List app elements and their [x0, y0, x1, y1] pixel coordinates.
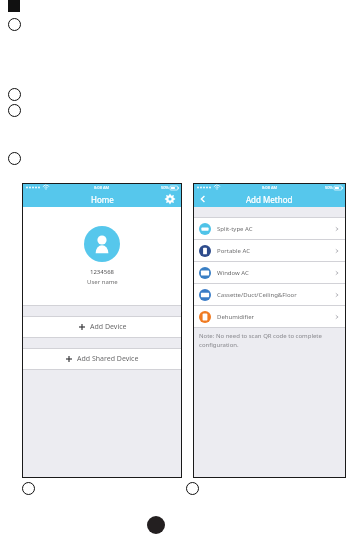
- staticText: Window AC: [217, 269, 249, 277]
- staticText: Split-type AC: [217, 225, 253, 233]
- button[interactable]: Add Device: [22, 317, 182, 337]
- button[interactable]: Portable AC: [193, 240, 346, 261]
- staticText: Home: [91, 194, 114, 205]
- button[interactable]: Cassette/Duct/Ceiling&Floor: [193, 284, 346, 305]
- button[interactable]: Window AC: [193, 262, 346, 283]
- button[interactable]: Back: [197, 193, 209, 205]
- staticText: Portable AC: [217, 247, 250, 255]
- button[interactable]: Split-type AC: [193, 218, 346, 239]
- staticText: 1234568: [90, 268, 115, 276]
- staticText: User name: [87, 278, 118, 286]
- staticText: 50%: [161, 185, 169, 190]
- button[interactable]: Dehumidifier: [193, 306, 346, 327]
- staticText: 8:08 AM: [94, 185, 110, 190]
- staticText: Add Method: [246, 194, 293, 205]
- staticText: 8:08 AM: [262, 185, 278, 190]
- staticText: 50%: [325, 185, 333, 190]
- button[interactable]: Add Shared Device: [22, 349, 182, 369]
- staticText: Add Device: [90, 322, 127, 332]
- staticText: Cassette/Duct/Ceiling&Floor: [217, 291, 297, 299]
- staticText: Note: No need to scan QR code to complet…: [199, 332, 322, 349]
- staticText: Add Shared Device: [77, 354, 139, 364]
- staticText: Dehumidifier: [217, 313, 255, 321]
- button[interactable]: Settings: [164, 193, 176, 205]
